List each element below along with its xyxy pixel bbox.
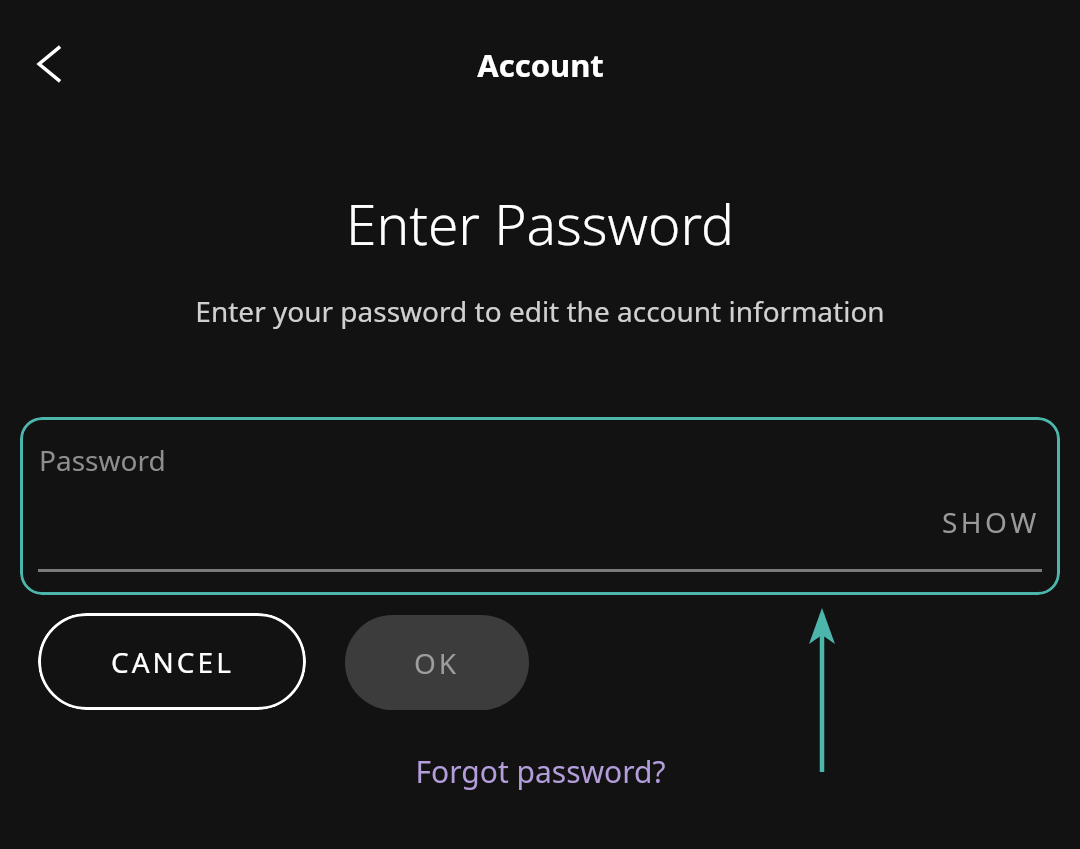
button[interactable]: SHOW	[900, 497, 1040, 547]
staticText: Password	[39, 441, 166, 479]
button[interactable]: OK	[345, 615, 529, 710]
staticText: Account	[477, 44, 604, 84]
staticText: Forgot password?	[415, 751, 666, 792]
button[interactable]: Password	[20, 417, 1060, 595]
staticText: CANCEL	[111, 643, 234, 681]
staticText: OK	[414, 644, 460, 682]
button[interactable]: Forgot password?	[415, 751, 666, 792]
button[interactable]: Back	[16, 28, 86, 100]
staticText: SHOW	[942, 503, 1040, 541]
button[interactable]: CANCEL	[38, 613, 306, 710]
staticText: Enter Password	[346, 186, 734, 252]
staticText: Enter your password to edit the account …	[195, 292, 885, 330]
